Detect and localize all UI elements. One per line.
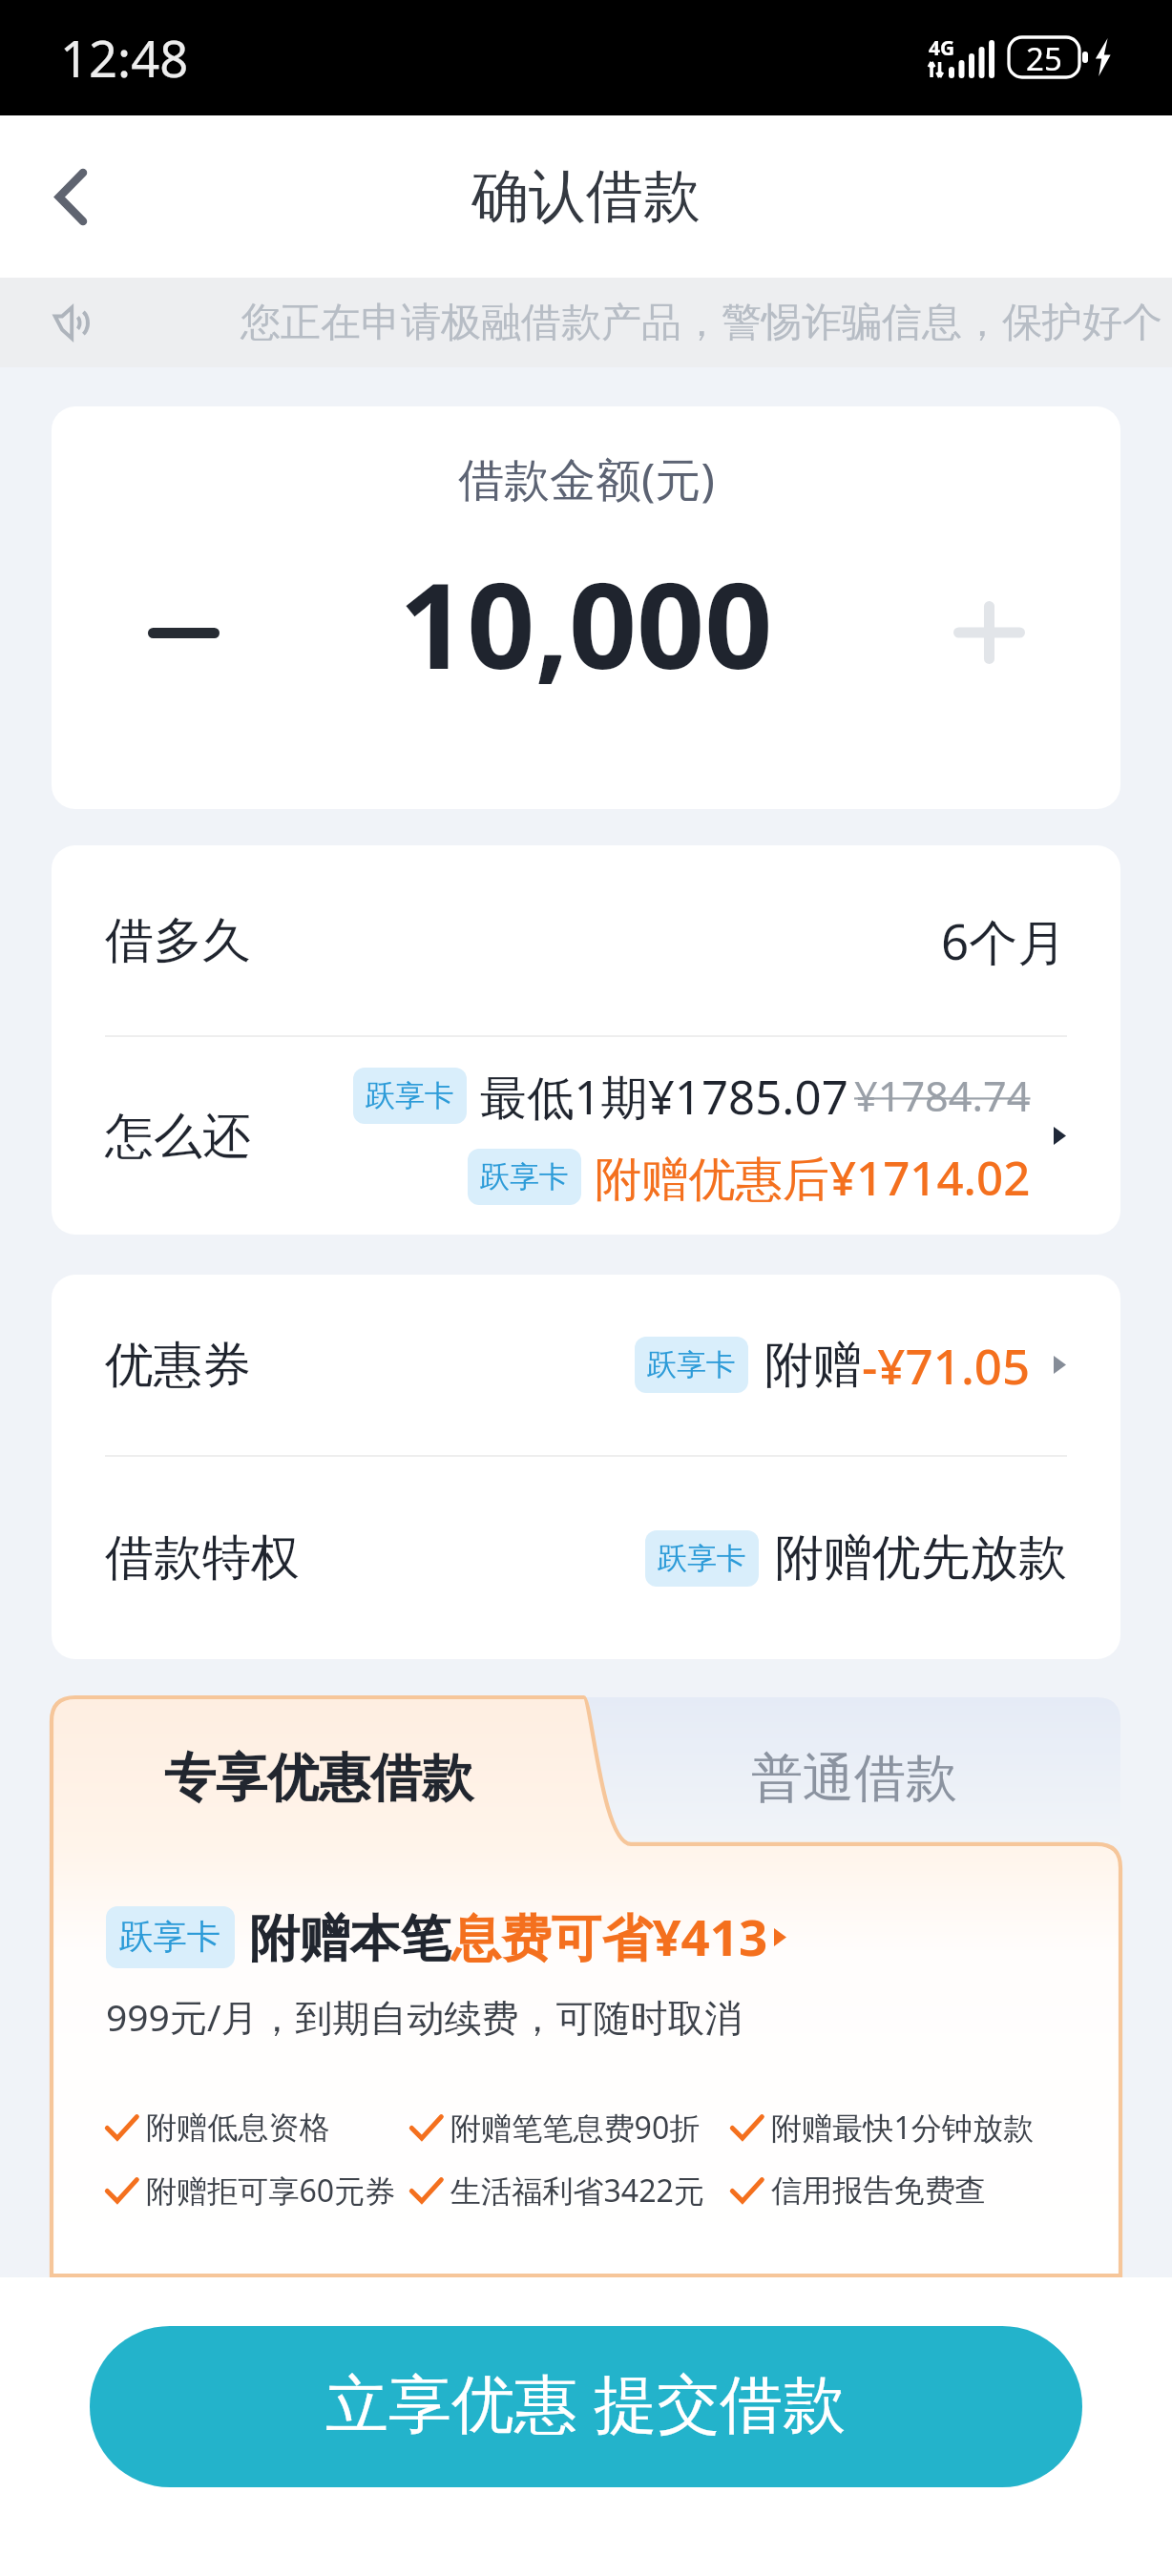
staticText: 附赠本笔息费可省¥413 [249, 1902, 768, 1971]
staticText: 跃享卡 [647, 1346, 736, 1383]
staticText: 4G [929, 34, 955, 62]
button[interactable]: 优惠券 [52, 1275, 1120, 1455]
staticText: 信用报告免费查 [771, 2171, 986, 2210]
staticText: 怎么还 [105, 1106, 251, 1167]
staticText: 999元/月，到期自动续费，可随时取消 [106, 1991, 743, 2042]
button[interactable]: Back [0, 128, 137, 265]
staticText: 借款特权 [105, 1527, 300, 1589]
staticText: 25 [1026, 37, 1062, 77]
button[interactable]: Increase amount [920, 564, 1057, 701]
button[interactable]: 跃享卡 [106, 1902, 786, 1971]
staticText: 附赠低息资格 [146, 2109, 330, 2147]
staticText: 跃享卡 [366, 1077, 454, 1114]
staticText: 6个月 [941, 907, 1067, 974]
button[interactable]: 立享优惠 提交借款 [90, 2326, 1082, 2487]
staticText: 普通借款 [751, 1746, 957, 1811]
staticText: 借多久 [105, 910, 251, 971]
button[interactable]: 专享优惠借款 [52, 1697, 586, 1844]
staticText: 跃享卡 [119, 1916, 221, 1959]
button[interactable]: 借多久 [52, 845, 1120, 1035]
staticText: 生活福利省3422元 [450, 2170, 704, 2212]
staticText: 借款金额(元) [458, 447, 715, 510]
button[interactable]: 普通借款 [586, 1697, 1120, 1844]
staticText: ¥1784.74 [854, 1068, 1031, 1124]
staticText: 跃享卡 [658, 1540, 746, 1577]
staticText: 最低1期¥1785.07 [480, 1064, 848, 1128]
button[interactable]: 怎么还 [52, 1037, 1120, 1235]
staticText: 优惠券 [105, 1335, 251, 1396]
staticText: -¥71.05 [862, 1332, 1031, 1398]
button[interactable]: 借款特权 [52, 1457, 1120, 1659]
staticText: 跃享卡 [480, 1158, 569, 1195]
staticText: 12:48 [60, 24, 189, 93]
staticText: 您正在申请极融借款产品，警惕诈骗信息，保护好个人资金安全 [241, 298, 1172, 348]
staticText: 附赠最快1分钟放款 [771, 2107, 1035, 2149]
staticText: 立享优惠 提交借款 [325, 2358, 847, 2444]
staticText: 附赠 [764, 1335, 862, 1396]
staticText: 附赠笔笔息费90折 [450, 2107, 701, 2149]
staticText: 10,000 [399, 542, 773, 704]
staticText: 附赠拒可享60元券 [146, 2170, 396, 2212]
staticText: 附赠优惠后¥1714.02 [595, 1145, 1031, 1209]
staticText: 专享优惠借款 [164, 1746, 473, 1811]
staticText: 确认借款 [471, 160, 701, 233]
button[interactable]: Decrease amount [115, 564, 252, 701]
staticText: 附赠优先放款 [775, 1527, 1067, 1589]
